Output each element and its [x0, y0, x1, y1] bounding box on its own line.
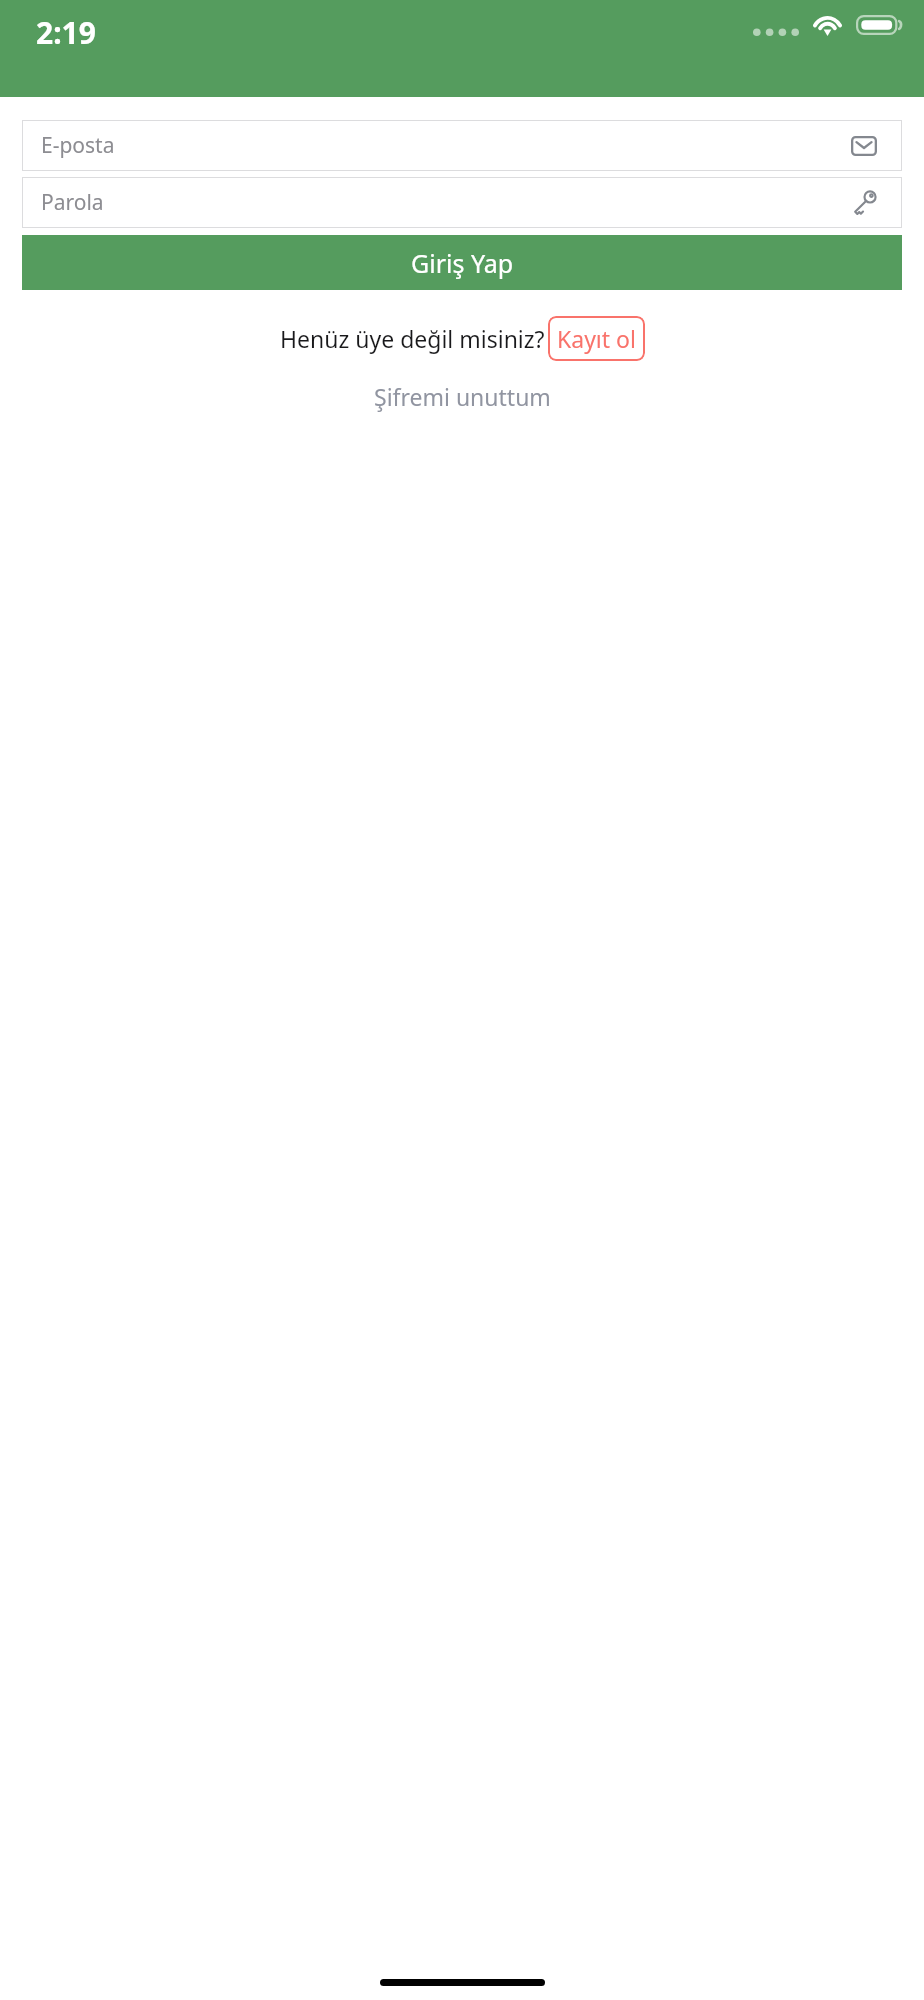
button[interactable]: Şifremi unuttum — [364, 375, 561, 418]
button[interactable]: Giriş Yap — [22, 235, 902, 290]
staticText: Giriş Yap — [411, 246, 514, 280]
other: Parola — [851, 189, 878, 216]
button[interactable]: Kayıt ol — [548, 316, 645, 361]
staticText: Parola — [41, 188, 104, 217]
button[interactable]: E-posta — [22, 120, 902, 171]
staticText: E-posta — [41, 131, 115, 160]
staticText: 2:19 — [36, 12, 96, 53]
other: E-posta — [851, 136, 877, 156]
staticText: Henüz üye değil misiniz? — [280, 323, 545, 354]
button[interactable]: Parola — [22, 177, 902, 228]
staticText: Şifremi unuttum — [374, 381, 551, 412]
staticText: Kayıt ol — [557, 323, 636, 354]
